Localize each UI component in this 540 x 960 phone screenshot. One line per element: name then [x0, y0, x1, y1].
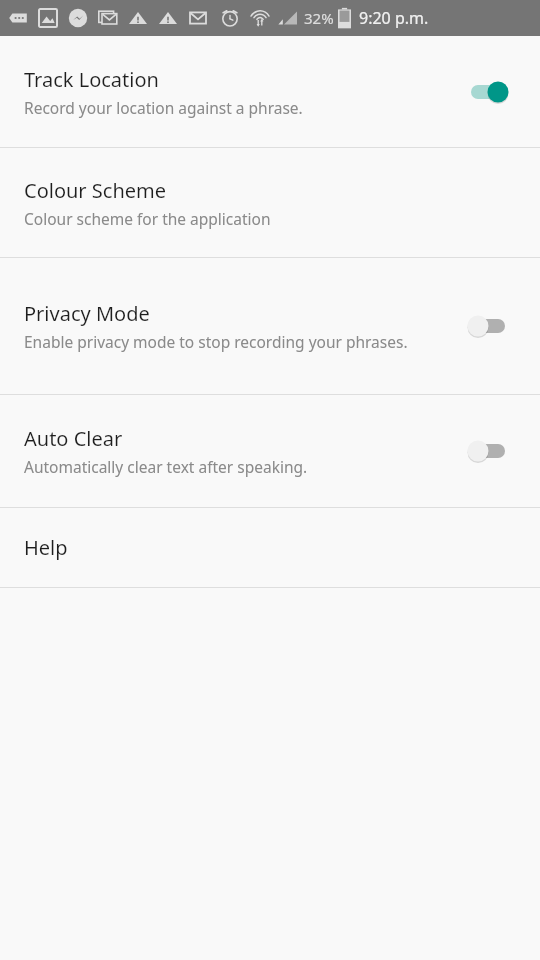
- staticText: Privacy Mode: [24, 300, 150, 327]
- staticText: Track Location: [24, 66, 159, 93]
- staticText: Colour Scheme: [24, 177, 167, 204]
- staticText: Enable privacy mode to stop recording yo…: [24, 331, 408, 352]
- staticText: 32%: [304, 8, 334, 28]
- staticText: Help: [24, 534, 68, 561]
- button[interactable]: Toggle on: [460, 70, 526, 114]
- button[interactable]: Help: [0, 508, 540, 587]
- button[interactable]: Track Location: [0, 36, 540, 147]
- button[interactable]: Privacy Mode: [0, 258, 540, 394]
- staticText: 9:20 p.m.: [359, 7, 429, 29]
- button[interactable]: Colour Scheme: [0, 148, 540, 257]
- button[interactable]: Auto Clear: [0, 395, 540, 507]
- staticText: Colour scheme for the application: [24, 208, 271, 229]
- staticText: Auto Clear: [24, 425, 123, 452]
- staticText: Record your location against a phrase.: [24, 97, 303, 118]
- button[interactable]: Toggle off: [460, 429, 526, 473]
- staticText: Automatically clear text after speaking.: [24, 456, 308, 477]
- button[interactable]: Toggle off: [460, 304, 526, 348]
